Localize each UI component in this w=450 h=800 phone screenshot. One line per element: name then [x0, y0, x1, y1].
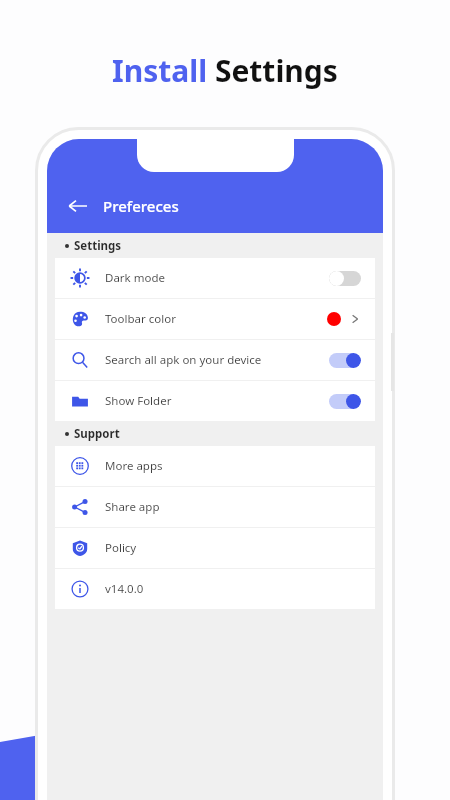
- button[interactable]: Off: [329, 271, 361, 286]
- button[interactable]: More apps: [55, 446, 375, 486]
- staticText: Share app: [105, 499, 160, 515]
- staticText: Settings: [74, 238, 122, 254]
- staticText: Support: [74, 426, 120, 442]
- button[interactable]: Policy: [55, 528, 375, 568]
- staticText: Install Settings: [112, 50, 338, 91]
- staticText: Toolbar color: [105, 311, 176, 327]
- staticText: v14.0.0: [105, 581, 144, 597]
- button[interactable]: Back: [61, 189, 95, 223]
- staticText: Prefereces: [103, 196, 179, 216]
- button[interactable]: Share app: [55, 487, 375, 527]
- button[interactable]: Search all apk on your device: [55, 340, 375, 380]
- button[interactable]: Toolbar color: [55, 299, 375, 339]
- staticText: Dark mode: [105, 270, 165, 286]
- staticText: Search all apk on your device: [105, 352, 262, 368]
- button[interactable]: Show Folder: [55, 381, 375, 421]
- button[interactable]: Dark mode: [55, 258, 375, 298]
- staticText: Policy: [105, 540, 137, 556]
- staticText: Show Folder: [105, 393, 172, 409]
- staticText: More apps: [105, 458, 163, 474]
- button[interactable]: v14.0.0: [55, 569, 375, 609]
- button[interactable]: On: [329, 394, 361, 409]
- button[interactable]: On: [329, 353, 361, 368]
